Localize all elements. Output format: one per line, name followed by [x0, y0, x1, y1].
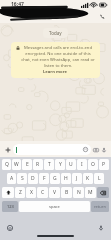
button[interactable]: O: [88, 159, 98, 170]
button[interactable]: return: [91, 201, 109, 212]
button[interactable]: S: [17, 173, 27, 184]
button[interactable]: Backspace: [97, 187, 109, 198]
staticText: 16:47: [11, 1, 24, 8]
button[interactable]: R: [33, 159, 43, 170]
button[interactable]: A: [7, 173, 16, 184]
staticText: A: [10, 175, 14, 182]
button[interactable]: space: [19, 201, 90, 212]
staticText: Learn more: [43, 69, 68, 75]
button[interactable]: M: [85, 187, 96, 198]
staticText: G: [53, 175, 57, 182]
staticText: L: [98, 175, 101, 182]
button[interactable]: Z: [15, 187, 25, 198]
staticText: C: [41, 189, 45, 196]
button[interactable]: J: [72, 173, 82, 184]
button[interactable]: U: [66, 159, 76, 170]
staticText: X: [30, 189, 33, 196]
staticText: return: [94, 204, 106, 209]
staticText: R: [36, 161, 40, 168]
button[interactable]: Voice call: [99, 13, 106, 20]
staticText: Messages and calls are end-to-end encryp…: [21, 45, 95, 69]
staticText: Q: [5, 161, 9, 168]
staticText: B: [65, 189, 69, 196]
button[interactable]: V: [49, 187, 60, 198]
button[interactable]: N: [73, 187, 84, 198]
button[interactable]: Camera: [93, 147, 99, 153]
button[interactable]: Y: [55, 159, 65, 170]
staticText: J: [76, 175, 78, 182]
staticText: U: [69, 161, 73, 168]
button[interactable]: Q: [2, 159, 11, 170]
staticText: space: [49, 204, 60, 209]
staticText: T: [48, 161, 51, 168]
button[interactable]: Stickers: [13, 144, 91, 155]
staticText: K: [86, 175, 90, 182]
button[interactable]: H: [61, 173, 71, 184]
button[interactable]: Emoji: [6, 224, 14, 232]
button[interactable]: X: [26, 187, 36, 198]
button[interactable]: F: [39, 173, 49, 184]
staticText: 123: [7, 204, 14, 209]
button[interactable]: T: [44, 159, 54, 170]
button[interactable]: W: [12, 159, 21, 170]
button[interactable]: C: [37, 187, 48, 198]
staticText: E: [26, 161, 29, 168]
staticText: S: [21, 175, 24, 182]
button[interactable]: I: [77, 159, 87, 170]
button[interactable]: Attach: [3, 145, 12, 154]
staticText: W: [14, 161, 19, 168]
button[interactable]: Dictation: [97, 224, 105, 232]
staticText: Z: [19, 189, 22, 196]
staticText: N: [77, 189, 81, 196]
staticText: O: [91, 161, 95, 168]
staticText: H: [64, 175, 68, 182]
button[interactable]: L: [94, 173, 104, 184]
button[interactable]: Messages and calls are end-to-end encryp…: [11, 42, 100, 78]
staticText: F: [43, 175, 46, 182]
button[interactable]: D: [28, 173, 38, 184]
staticText: Y: [59, 161, 62, 168]
button[interactable]: Shift: [2, 187, 14, 198]
staticText: Today: [49, 30, 62, 36]
staticText: D: [31, 175, 35, 182]
button[interactable]: Stickers: [83, 147, 88, 152]
button[interactable]: G: [50, 173, 60, 184]
staticText: V: [53, 189, 57, 196]
button[interactable]: Voice message: [101, 147, 107, 153]
button[interactable]: 123: [2, 201, 18, 212]
button[interactable]: K: [83, 173, 93, 184]
staticText: I: [81, 161, 83, 168]
staticText: P: [102, 161, 106, 168]
button[interactable]: E: [22, 159, 32, 170]
staticText: M: [88, 189, 93, 196]
button[interactable]: P: [99, 159, 109, 170]
button[interactable]: B: [61, 187, 72, 198]
